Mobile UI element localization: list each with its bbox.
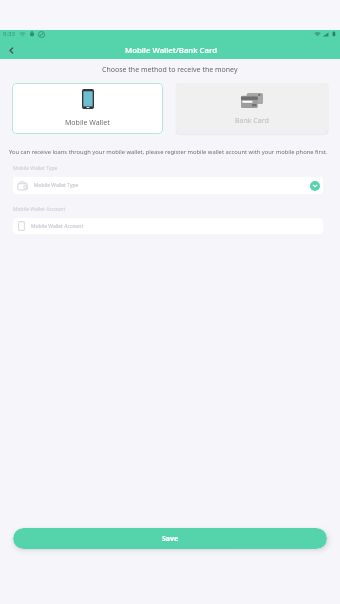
staticText: 9:33: [3, 30, 15, 38]
button[interactable]: Bank Card: [176, 83, 328, 134]
staticText: Bank Card: [235, 116, 269, 126]
staticText: You can receive loans through your mobil…: [9, 148, 328, 156]
button[interactable]: Back: [0, 42, 22, 59]
staticText: Mobile Wallet Account: [13, 206, 66, 213]
staticText: Choose the method to receive the money: [102, 65, 238, 75]
staticText: Mobile Wallet/Bank Card: [125, 45, 218, 56]
staticText: Mobile Wallet Type: [34, 182, 79, 189]
staticText: Save: [162, 534, 179, 544]
staticText: Mobile Wallet Type: [13, 165, 58, 172]
staticText: Mobile Wallet: [65, 118, 110, 128]
button[interactable]: Mobile Wallet: [12, 83, 163, 134]
button[interactable]: Mobile Wallet Account: [13, 218, 323, 234]
button[interactable]: Save: [13, 528, 327, 549]
other: Select wallet type: [310, 181, 320, 191]
button[interactable]: Mobile Wallet Type: [13, 177, 323, 194]
staticText: Mobile Wallet Account: [31, 223, 84, 230]
